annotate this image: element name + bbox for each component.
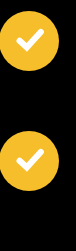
button[interactable]: Completed (0, 131, 59, 191)
button[interactable]: Completed (0, 11, 59, 71)
